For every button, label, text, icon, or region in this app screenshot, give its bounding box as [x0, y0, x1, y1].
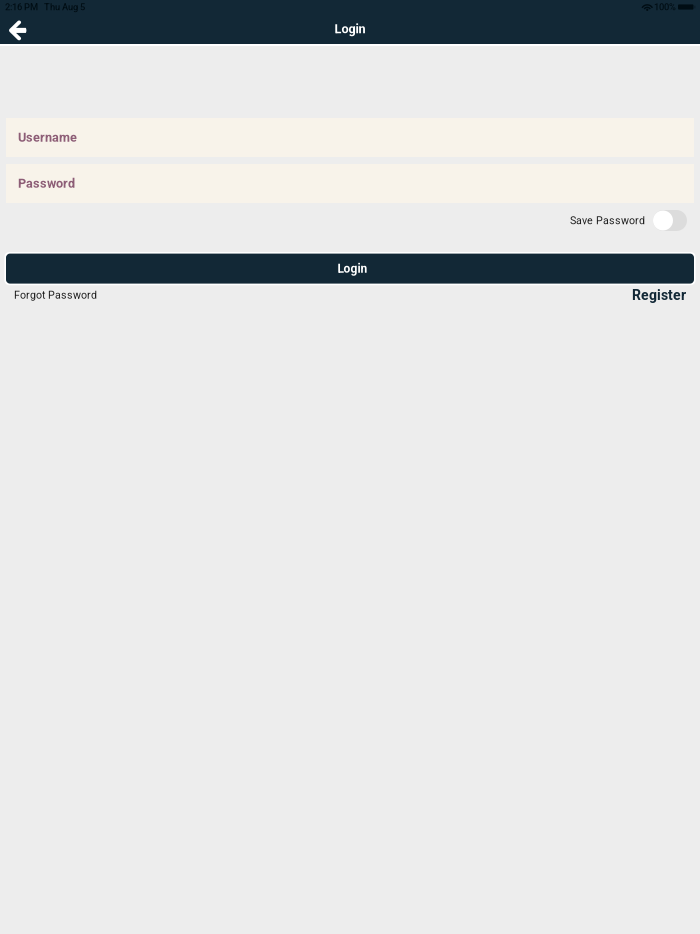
button[interactable]: Save Password: [0, 203, 700, 238]
button[interactable]: Login: [0, 252, 700, 285]
staticText: 2:16 PM: [5, 1, 38, 12]
staticText: 100%: [654, 1, 676, 12]
staticText: Login: [337, 262, 367, 276]
staticText: Forgot Password: [14, 289, 97, 301]
button[interactable]: Forgot Password: [0, 286, 97, 304]
staticText: Thu Aug 5: [44, 1, 85, 12]
staticText: Register: [632, 287, 686, 303]
button[interactable]: Back: [0, 14, 35, 44]
staticText: Save Password: [570, 214, 645, 227]
button[interactable]: Register: [632, 286, 700, 304]
staticText: Password: [18, 176, 75, 191]
staticText: Login: [334, 22, 365, 36]
staticText: Username: [18, 130, 77, 145]
